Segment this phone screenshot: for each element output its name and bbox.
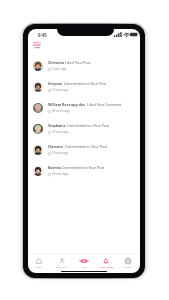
- button[interactable]: Christina: [28, 55, 140, 76]
- staticText: 9:45: [38, 32, 47, 38]
- staticText: Stephanie: [48, 123, 67, 128]
- staticText: Katrina: [48, 165, 62, 170]
- staticText: Notifications: [99, 265, 114, 268]
- staticText: 55 min ago: [52, 172, 69, 176]
- button[interactable]: Live: [73, 258, 95, 269]
- button[interactable]: Home: [28, 258, 50, 269]
- staticText: Commented on Your Post: [64, 81, 107, 86]
- staticText: 37 min ago: [52, 130, 69, 134]
- button[interactable]: Clarence: [28, 139, 140, 160]
- staticText: Commented on Your Post: [67, 123, 110, 128]
- staticText: Greyson: [48, 81, 64, 86]
- button[interactable]: Menu: [30, 41, 44, 50]
- staticText: 15 min ago: [52, 88, 69, 92]
- staticText: William Root app this: [48, 102, 87, 107]
- button[interactable]: Requests: [50, 258, 73, 269]
- staticText: Christina: [48, 60, 65, 65]
- staticText: Clarence: [48, 144, 65, 149]
- staticText: Liked Your Post: [65, 60, 91, 65]
- staticText: 47 mins ago: [52, 109, 70, 113]
- staticText: Liked Your Comment: [87, 102, 122, 107]
- button[interactable]: Notifications: [95, 258, 117, 269]
- staticText: Home: [35, 265, 43, 268]
- staticText: 1 min ago: [52, 67, 67, 71]
- staticText: Profile: [124, 265, 132, 268]
- button[interactable]: Stephanie: [28, 118, 140, 139]
- staticText: Requests: [56, 265, 67, 268]
- staticText: 50 min ago: [52, 151, 69, 155]
- button[interactable]: Katrina: [28, 160, 140, 181]
- button[interactable]: Profile: [117, 258, 139, 269]
- button[interactable]: William Root app this: [28, 97, 140, 118]
- button[interactable]: Greyson: [28, 76, 140, 97]
- staticText: Commented on Your Post: [65, 144, 108, 149]
- staticText: Live: [82, 265, 87, 268]
- staticText: Commented on Your Post: [62, 165, 105, 170]
